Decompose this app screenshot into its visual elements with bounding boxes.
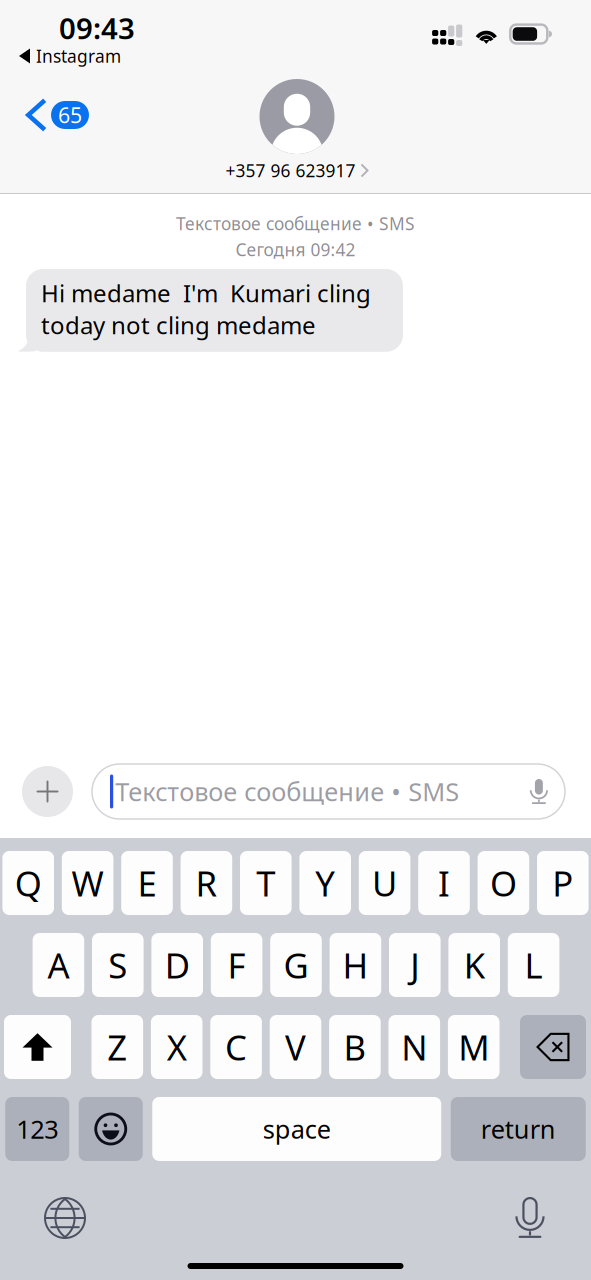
staticText: space	[263, 1112, 331, 1146]
button[interactable]: Z	[91, 1015, 143, 1079]
staticText: Instagram	[36, 44, 121, 67]
button[interactable]: P	[537, 851, 589, 915]
staticText: return	[481, 1112, 556, 1146]
staticText: 65	[58, 101, 82, 129]
staticText: Q	[15, 860, 42, 906]
button[interactable]: Dictate	[495, 1192, 565, 1244]
button[interactable]: Next keyboard	[30, 1192, 100, 1244]
button[interactable]: F	[211, 933, 262, 997]
button[interactable]: 123	[5, 1097, 69, 1161]
staticText: T	[256, 860, 275, 906]
button[interactable]: E	[121, 851, 173, 915]
button[interactable]: O	[478, 851, 529, 915]
button[interactable]: C	[210, 1015, 262, 1079]
button[interactable]: Delete	[520, 1015, 586, 1079]
staticText: P	[552, 860, 573, 906]
button[interactable]: R	[181, 851, 232, 915]
staticText: Текстовое сообщение • SMS	[115, 775, 459, 808]
staticText: K	[464, 942, 485, 988]
staticText: S	[108, 942, 127, 988]
staticText: 123	[16, 1112, 58, 1146]
staticText: Y	[315, 860, 335, 906]
staticText: N	[401, 1024, 427, 1070]
button[interactable]: Add attachment	[22, 766, 73, 817]
button[interactable]: D	[151, 933, 203, 997]
staticText: +357 96 623917	[225, 159, 355, 182]
staticText: W	[72, 860, 104, 906]
button[interactable]: H	[330, 933, 381, 997]
staticText: J	[410, 942, 419, 988]
staticText: V	[285, 1024, 306, 1070]
button[interactable]: Q	[2, 851, 54, 915]
button[interactable]: space	[152, 1097, 441, 1161]
staticText: C	[225, 1024, 247, 1070]
staticText: Сегодня 09:42	[235, 238, 355, 261]
staticText: D	[165, 942, 190, 988]
button[interactable]: Y	[299, 851, 351, 915]
staticText: Текстовое сообщение • SMS	[176, 212, 415, 235]
button[interactable]: return	[451, 1097, 586, 1161]
staticText: Z	[107, 1024, 127, 1070]
button[interactable]: A	[33, 933, 84, 997]
button[interactable]: X	[151, 1015, 202, 1079]
button[interactable]: Shift	[4, 1015, 71, 1079]
staticText: Hi medame I'm Kumari cling today not cli…	[41, 277, 371, 341]
staticText: B	[343, 1024, 366, 1070]
staticText: E	[137, 860, 156, 906]
staticText: M	[458, 1024, 489, 1070]
button[interactable]: N	[388, 1015, 440, 1079]
staticText: 09:43	[59, 8, 135, 47]
button[interactable]: 65	[0, 90, 103, 140]
staticText: G	[283, 942, 308, 988]
button[interactable]: S	[92, 933, 144, 997]
button[interactable]: I	[418, 851, 470, 915]
staticText: A	[47, 942, 69, 988]
staticText: O	[490, 860, 517, 906]
button[interactable]: B	[329, 1015, 381, 1079]
button[interactable]: Emoji	[79, 1097, 143, 1161]
staticText: I	[438, 860, 450, 906]
staticText: F	[228, 942, 246, 988]
button[interactable]: K	[448, 933, 500, 997]
staticText: R	[195, 860, 217, 906]
button[interactable]: W	[62, 851, 113, 915]
staticText: L	[525, 942, 543, 988]
staticText: H	[342, 942, 368, 988]
button[interactable]: V	[270, 1015, 321, 1079]
button[interactable]: T	[240, 851, 292, 915]
button[interactable]: J	[389, 933, 441, 997]
staticText: X	[167, 1024, 187, 1070]
button[interactable]: M	[448, 1015, 499, 1079]
button[interactable]: U	[359, 851, 410, 915]
button[interactable]: G	[270, 933, 322, 997]
button[interactable]: L	[508, 933, 559, 997]
staticText: U	[372, 860, 397, 906]
